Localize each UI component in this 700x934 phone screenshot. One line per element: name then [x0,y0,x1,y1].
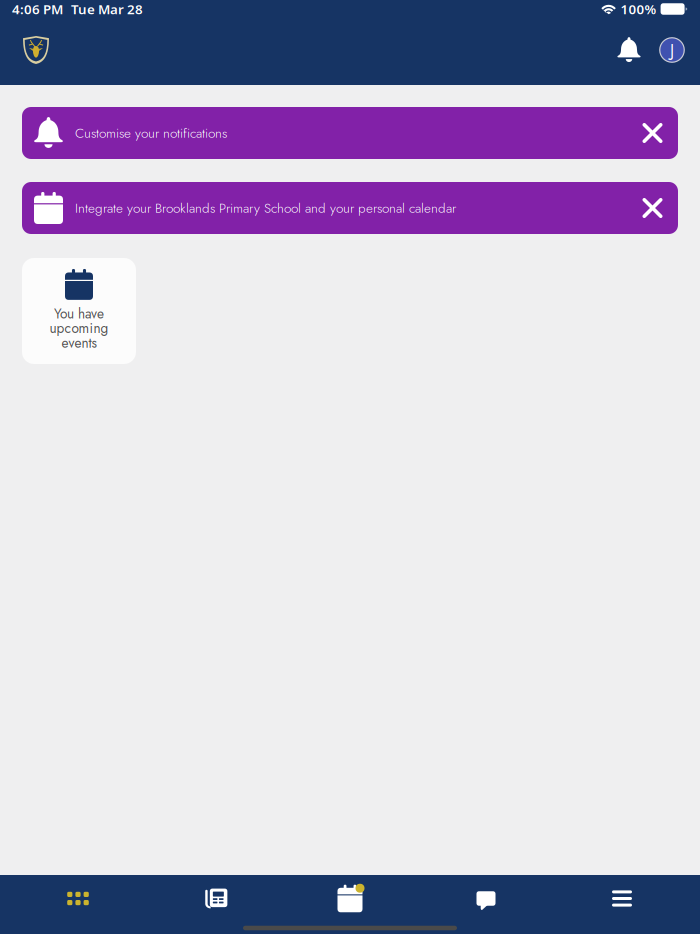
staticText: You have [54,304,104,324]
button[interactable]: Calendar [282,875,418,922]
button[interactable]: Profile [655,33,689,67]
button[interactable]: Messages [418,875,554,922]
button[interactable]: Dashboard [10,875,146,922]
staticText: J [670,37,674,62]
staticText: Customise your notifications [75,123,227,143]
staticText: 100% [621,0,657,18]
button[interactable]: School crest [17,30,55,70]
staticText: Tue Mar 28 [71,0,143,18]
staticText: upcoming [49,318,108,338]
button[interactable]: Menu [554,875,690,922]
button[interactable]: You have [22,258,136,364]
staticText: 4:06 PM [12,0,63,18]
button[interactable]: Customise your notifications [22,107,678,159]
button[interactable]: Notifications [612,33,646,67]
button[interactable]: Integrate your Brooklands Primary School… [22,182,678,234]
staticText: Integrate your Brooklands Primary School… [75,198,456,218]
button[interactable]: News [146,875,282,922]
staticText: events [61,333,96,353]
